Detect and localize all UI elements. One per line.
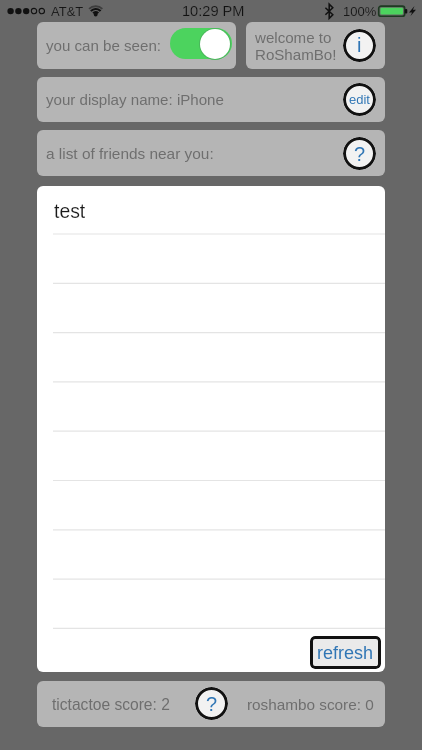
staticText: 10:29 PM xyxy=(182,3,245,19)
staticText: your display name: iPhone xyxy=(46,91,224,108)
button[interactable]: Visibility toggle, on xyxy=(170,27,232,60)
staticText: ? xyxy=(354,143,366,165)
button[interactable]: a list of friends near you: xyxy=(37,130,385,176)
staticText: edit xyxy=(349,92,370,107)
staticText: 100% xyxy=(343,4,377,19)
button[interactable]: your display name: iPhone xyxy=(37,77,385,122)
button[interactable]: Info xyxy=(343,29,376,62)
staticText: refresh xyxy=(317,643,374,663)
staticText: ? xyxy=(206,693,218,715)
staticText: you can be seen: xyxy=(46,37,161,54)
button[interactable]: refresh xyxy=(310,636,381,669)
button[interactable]: welcome to RoShamBo! xyxy=(246,22,385,69)
button[interactable]: Help about friends list xyxy=(343,137,376,170)
staticText: roshambo score: 0 xyxy=(247,696,374,713)
button[interactable]: test xyxy=(37,186,385,234)
button[interactable]: Score help xyxy=(195,687,228,720)
button[interactable]: you can be seen: xyxy=(37,22,236,69)
staticText: test xyxy=(54,200,86,222)
staticText: tictactoe score: 2 xyxy=(52,696,170,713)
staticText: i xyxy=(357,34,362,56)
staticText: AT&T xyxy=(51,4,84,19)
button[interactable]: Edit display name xyxy=(343,83,376,116)
staticText: welcome to RoShamBo! xyxy=(255,29,337,63)
staticText: a list of friends near you: xyxy=(46,145,214,162)
